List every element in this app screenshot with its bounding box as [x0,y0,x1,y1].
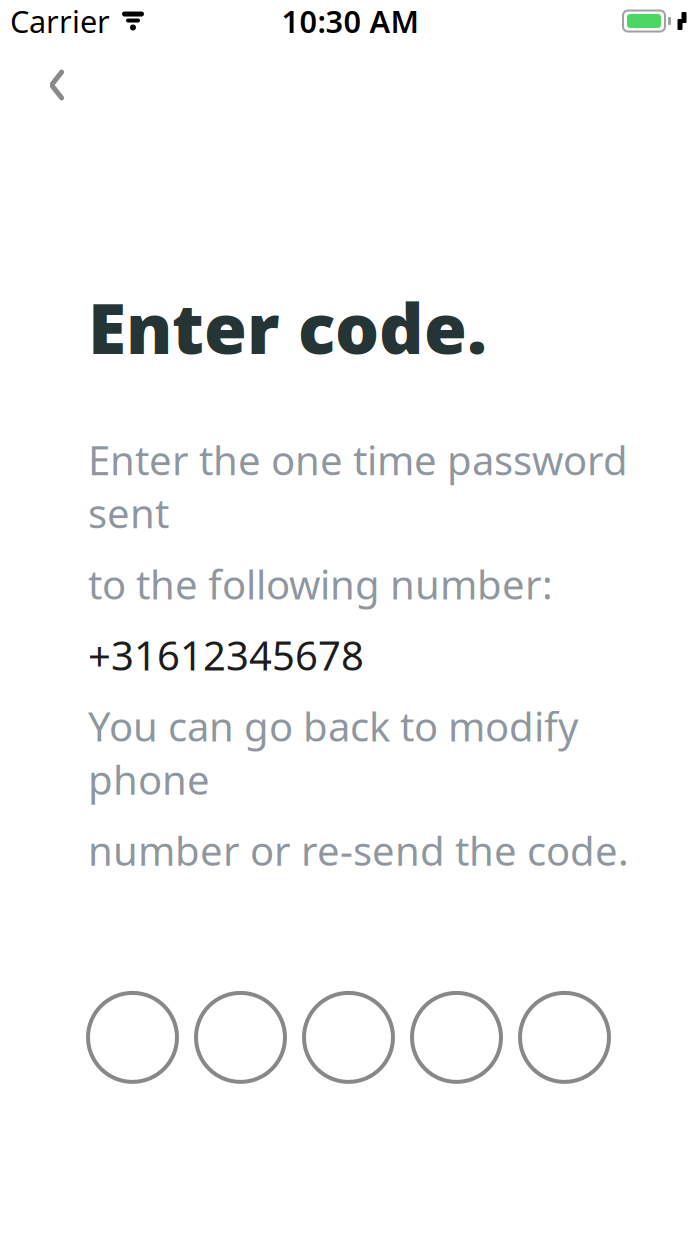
button[interactable]: Back [18,52,96,118]
staticText: to the following number: [88,557,553,610]
staticText: number or re-send the code. [88,824,629,877]
staticText: Enter the one time password sent [88,433,628,539]
staticText: Carrier [10,1,110,41]
staticText: Enter code. [88,281,487,373]
staticText: You can go back to modify phone [88,699,578,806]
staticText: +31612345678 [88,628,364,681]
staticText: 10:30 AM [281,1,418,41]
